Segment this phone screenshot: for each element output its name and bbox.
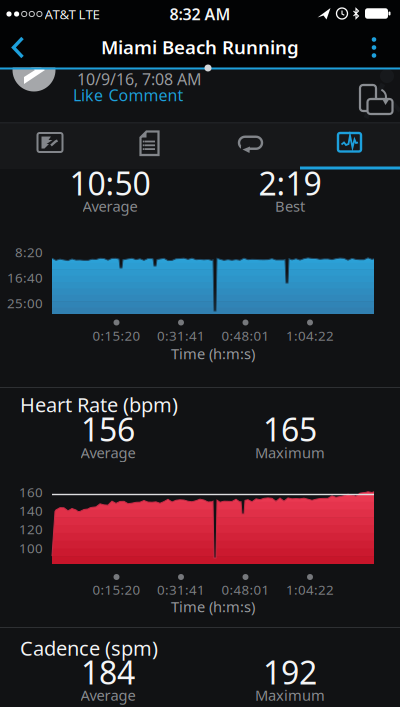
staticText: Like [73,84,103,106]
staticText: Heart Rate (bpm) [20,391,178,418]
staticText: 10/9/16, 7:08 AM [77,68,202,90]
staticText: 165 [263,408,317,450]
staticText: Average [80,443,135,462]
staticText: Best [275,196,305,216]
button[interactable]: Laps [200,124,300,168]
button[interactable]: View charts in landscape [352,78,396,118]
button[interactable]: Back [0,29,44,66]
staticText: Time (h:m:s) [171,597,255,616]
staticText: Average [82,196,137,216]
staticText: Comment [108,84,183,106]
staticText: 1:04:22 [286,581,334,598]
staticText: 120 [19,520,43,538]
staticText: Cadence (spm) [20,635,158,661]
button[interactable]: More options [354,29,394,65]
button[interactable]: Like [73,84,103,106]
staticText: Average [80,685,135,705]
staticText: 16:40 [7,269,43,286]
staticText: LTE [78,5,99,23]
staticText: Miami Beach Running [101,35,299,59]
button[interactable]: Comment [108,84,183,106]
staticText: 0:48:01 [221,327,269,344]
staticText: 25:00 [7,294,43,312]
staticText: 0:15:20 [92,581,140,598]
staticText: 0:31:41 [157,581,205,598]
staticText: 8:32 AM [169,3,230,25]
staticText: 0:15:20 [92,327,140,344]
button[interactable]: Details [100,124,200,168]
staticText: 192 [263,651,317,693]
staticText: 8:20 [15,243,43,261]
staticText: 1:04:22 [286,327,334,344]
staticText: 140 [19,502,43,519]
staticText: 100 [19,539,43,557]
staticText: 0:48:01 [221,581,269,598]
button[interactable]: Charts [300,124,400,168]
staticText: AT&T [44,5,75,23]
staticText: Maximum [255,443,325,462]
staticText: 184 [81,651,135,693]
staticText: 2:19 [258,162,321,204]
staticText: 156 [81,408,135,450]
staticText: 160 [19,483,43,501]
staticText: Time (h:m:s) [171,344,255,363]
staticText: Maximum [255,685,325,705]
staticText: 0:31:41 [157,327,205,344]
staticText: 10:50 [69,162,150,204]
button[interactable]: Snapshot [0,124,100,168]
